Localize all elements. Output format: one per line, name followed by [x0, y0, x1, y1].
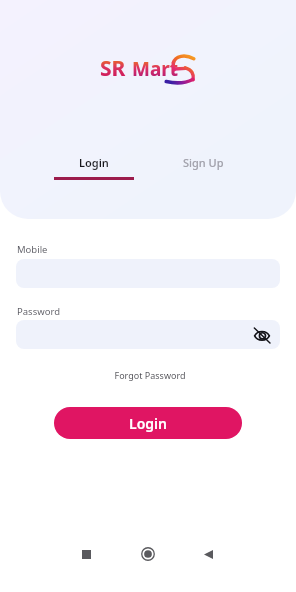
- button[interactable]: Back: [188, 534, 228, 574]
- button[interactable]: Login: [54, 152, 134, 180]
- button[interactable]: Forgot Password: [110, 367, 190, 383]
- staticText: Login: [129, 414, 167, 433]
- staticText: SR: [100, 54, 126, 83]
- button[interactable]: Sign Up: [164, 155, 243, 183]
- button[interactable]: Login: [54, 407, 242, 439]
- staticText: Mobile: [17, 243, 48, 256]
- staticText: Forgot Password: [114, 369, 186, 381]
- staticText: Mart: [132, 56, 179, 82]
- button[interactable]: Toggle password visibility: [251, 324, 273, 346]
- button[interactable]: Home: [128, 534, 168, 574]
- staticText: Login: [79, 155, 109, 170]
- button[interactable]: Toggle password visibility: [16, 320, 280, 349]
- staticText: Sign Up: [183, 155, 224, 170]
- button[interactable]: Recent apps: [66, 534, 106, 574]
- staticText: Password: [17, 305, 60, 318]
